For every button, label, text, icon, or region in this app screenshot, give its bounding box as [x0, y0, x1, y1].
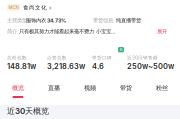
staticText: 近30日销售额: [127, 55, 158, 61]
button[interactable]: 展开: [157, 28, 167, 35]
staticText: 带货信息:: [93, 17, 115, 24]
staticText: 纯直播带货: [116, 17, 141, 24]
button[interactable]: 带货: [108, 85, 144, 98]
button[interactable]: 直播: [36, 85, 72, 98]
staticText: 简介:: [7, 28, 19, 35]
staticText: 近30天概览: [7, 106, 49, 116]
staticText: 展开: [157, 28, 167, 35]
staticText: 3,218.63w: [47, 62, 85, 71]
staticText: 概览: [12, 84, 24, 92]
staticText: 带货口碑: [92, 55, 112, 61]
staticText: 148.81w: [7, 62, 36, 71]
button[interactable]: 食尚文化 ›: [23, 4, 51, 11]
button[interactable]: 视频: [72, 85, 108, 98]
staticText: 点赞总数: [47, 55, 67, 61]
staticText: 直播: [48, 84, 60, 92]
staticText: 粉丝: [156, 84, 168, 92]
button[interactable]: 粉丝: [144, 85, 180, 98]
staticText: 只有极其努力才能看起来毫不费力 小宝宝…: [19, 28, 116, 35]
staticText: 新: [119, 47, 122, 52]
staticText: 视频: [84, 84, 96, 92]
staticText: 总粉丝数: [7, 55, 27, 61]
staticText: MCN: [8, 5, 18, 10]
staticText: 250w~500w: [127, 62, 174, 71]
staticText: 4.6: [92, 62, 104, 71]
staticText: 带货: [120, 84, 132, 92]
staticText: 服饰内衣 34.73%: [26, 17, 66, 24]
staticText: 主营类型:: [7, 17, 29, 24]
button[interactable]: 概览: [0, 85, 36, 98]
staticText: 食尚文化 ›: [23, 4, 51, 11]
